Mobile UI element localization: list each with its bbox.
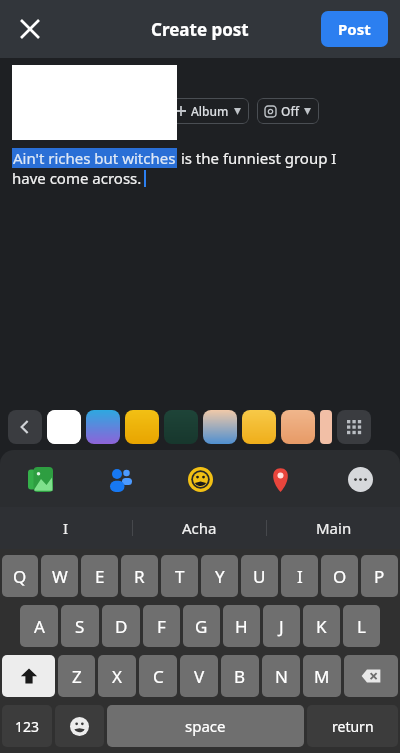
staticText: space (185, 716, 226, 736)
staticText: L (357, 615, 366, 638)
staticText: Post (338, 19, 371, 39)
button[interactable]: Feeling (178, 457, 222, 501)
button[interactable]: Sticker (320, 410, 332, 444)
button[interactable]: L (343, 605, 380, 647)
staticText: B (234, 665, 246, 688)
button[interactable]: Backspace (344, 655, 398, 697)
button[interactable]: G (183, 605, 220, 647)
button[interactable]: Check in (258, 457, 302, 501)
button[interactable]: All stickers (337, 410, 371, 444)
button[interactable]: U (241, 555, 278, 597)
button[interactable]: 123 (2, 705, 52, 747)
button[interactable]: Z (58, 655, 95, 697)
staticText: Ain't riches but witches (13, 148, 176, 168)
button[interactable]: Sticker (242, 410, 276, 444)
button[interactable]: C (139, 655, 177, 697)
button[interactable]: J (263, 605, 300, 647)
button[interactable]: Emoji (55, 705, 104, 747)
staticText: N (275, 665, 288, 688)
button[interactable]: return (307, 705, 398, 747)
button[interactable]: V (180, 655, 218, 697)
button[interactable]: Back (8, 410, 42, 444)
button[interactable]: S (61, 605, 99, 647)
staticText: 123 (15, 717, 40, 736)
staticText: Create post (151, 18, 249, 41)
button[interactable]: Y (201, 555, 238, 597)
button[interactable]: K (303, 605, 340, 647)
button[interactable]: M (303, 655, 341, 697)
staticText: I (63, 518, 69, 538)
staticText: Album (191, 103, 229, 119)
button[interactable]: N (262, 655, 300, 697)
button[interactable]: A (20, 605, 58, 647)
staticText: J (279, 615, 284, 638)
button[interactable]: I (281, 555, 318, 597)
staticText: Off (281, 103, 299, 119)
staticText: Q (13, 565, 27, 588)
button[interactable]: Sticker (86, 410, 120, 444)
button[interactable]: Acha (133, 507, 266, 549)
button[interactable]: O (321, 555, 358, 597)
button[interactable]: Post (321, 11, 388, 47)
staticText: C (153, 665, 164, 688)
button[interactable]: Sticker (164, 410, 198, 444)
button[interactable]: P (361, 555, 398, 597)
staticText: I (297, 565, 303, 588)
button[interactable]: X (98, 655, 136, 697)
button[interactable]: Sticker (281, 410, 315, 444)
staticText: P (374, 565, 385, 588)
button[interactable]: H (223, 605, 260, 647)
staticText: F (157, 615, 166, 638)
staticText: U (253, 565, 266, 588)
button[interactable]: Tag people (98, 457, 142, 501)
staticText: H (235, 615, 248, 638)
button[interactable]: Sticker (125, 410, 159, 444)
button[interactable]: W (41, 555, 78, 597)
button[interactable]: space (107, 705, 304, 747)
staticText: R (134, 565, 145, 588)
button[interactable]: More options (338, 457, 382, 501)
staticText: T (175, 565, 185, 588)
staticText: O (333, 565, 347, 588)
button[interactable]: R (121, 555, 158, 597)
staticText: Main (316, 518, 352, 538)
staticText: E (95, 565, 105, 588)
staticText: Z (72, 665, 82, 688)
button[interactable]: B (221, 655, 259, 697)
staticText: D (115, 615, 128, 638)
button[interactable]: Close (8, 7, 52, 51)
button[interactable]: E (81, 555, 118, 597)
staticText: S (75, 615, 85, 638)
button[interactable]: T (161, 555, 198, 597)
button[interactable]: Main (267, 507, 400, 549)
staticText: A (34, 615, 45, 638)
button[interactable]: Album (168, 98, 249, 124)
staticText: Acha (182, 518, 217, 538)
button[interactable]: Sticker (47, 410, 81, 444)
button[interactable]: Off (257, 98, 319, 124)
button[interactable]: Shift (2, 655, 55, 697)
button[interactable]: D (102, 605, 140, 647)
staticText: return (332, 717, 374, 736)
button[interactable]: Photo (18, 457, 62, 501)
button[interactable]: F (143, 605, 180, 647)
button[interactable]: Sticker (203, 410, 237, 444)
staticText: Y (215, 565, 225, 588)
button[interactable]: Q (2, 555, 38, 597)
staticText: G (195, 615, 208, 638)
button[interactable]: I (0, 507, 132, 549)
staticText: V (194, 665, 205, 688)
staticText: X (112, 665, 122, 688)
staticText: is the funniest group I (177, 148, 337, 168)
staticText: W (52, 565, 68, 588)
staticText: have come across. (12, 168, 142, 188)
staticText: M (314, 665, 330, 688)
staticText: K (316, 615, 327, 638)
